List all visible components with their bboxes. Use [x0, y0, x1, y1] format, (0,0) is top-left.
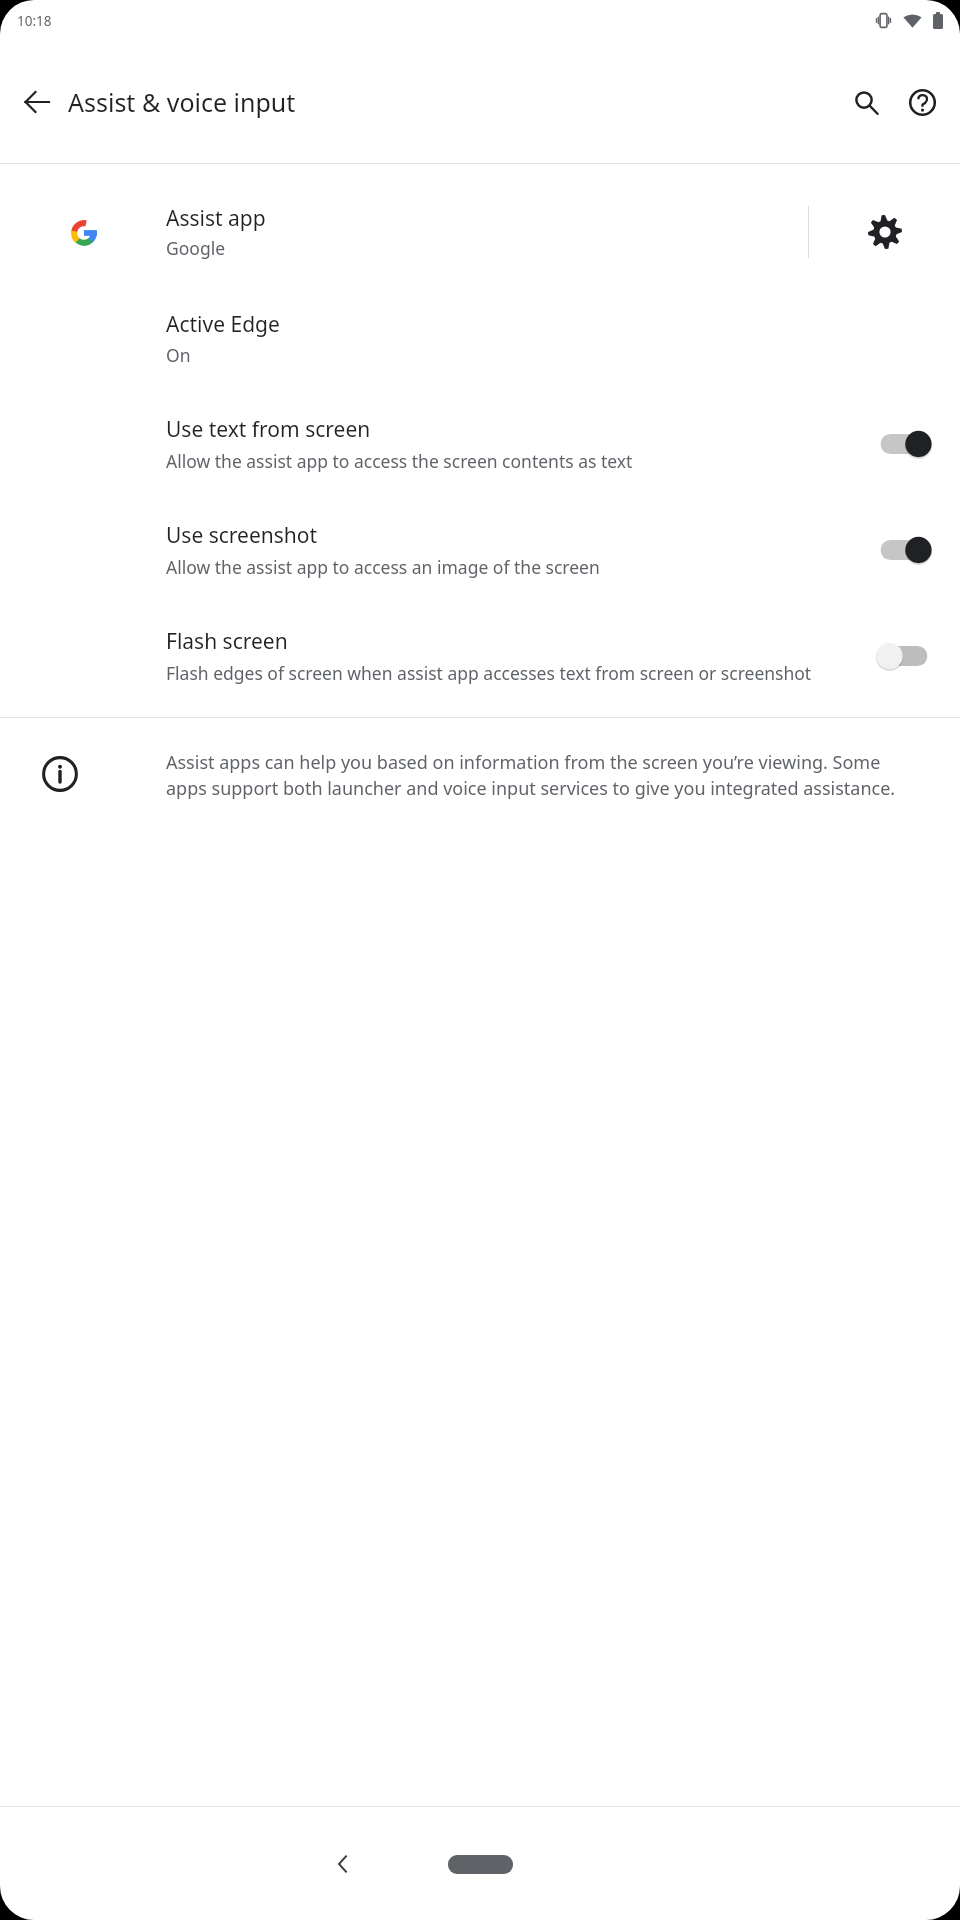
button[interactable]: Toggle on	[874, 426, 934, 462]
staticText: Assist apps can help you based on inform…	[166, 750, 918, 801]
button[interactable]: Toggle off	[874, 638, 934, 674]
button[interactable]: Home	[440, 1847, 520, 1881]
button[interactable]: Active Edge	[0, 282, 960, 389]
staticText: Assist & voice input	[68, 85, 296, 119]
staticText: Flash edges of screen when assist app ac…	[166, 661, 812, 685]
button[interactable]: Search	[840, 76, 892, 128]
staticText: 10:18	[17, 12, 52, 30]
button[interactable]: Toggle on	[874, 532, 934, 568]
button[interactable]: Back	[10, 75, 64, 129]
staticText: Assist app	[166, 204, 266, 233]
button[interactable]: Assist app settings	[809, 182, 960, 282]
staticText: Use screenshot	[166, 521, 318, 550]
button[interactable]: Help	[896, 76, 948, 128]
staticText: Allow the assist app to access an image …	[166, 555, 600, 579]
staticText: Flash screen	[166, 627, 288, 656]
staticText: Allow the assist app to access the scree…	[166, 449, 633, 473]
staticText: Use text from screen	[166, 415, 371, 444]
staticText: Active Edge	[166, 310, 280, 339]
staticText: Google	[166, 236, 226, 260]
button[interactable]: Assist app	[0, 182, 960, 282]
button[interactable]: Use screenshot	[0, 495, 960, 601]
staticText: On	[166, 343, 191, 367]
button[interactable]: Flash screen	[0, 601, 960, 707]
button[interactable]: Back	[315, 1836, 371, 1892]
button[interactable]: Use text from screen	[0, 389, 960, 495]
